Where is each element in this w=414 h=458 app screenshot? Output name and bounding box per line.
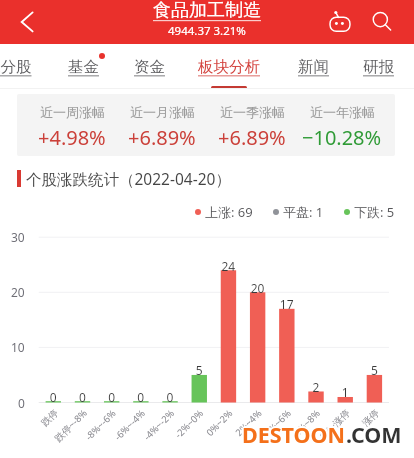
staticText: +6.89% bbox=[128, 124, 196, 151]
staticText: 研报 bbox=[363, 57, 394, 77]
staticText: 基金 bbox=[68, 57, 99, 77]
staticText: −10.28% bbox=[302, 124, 382, 151]
staticText: 成分股 bbox=[0, 57, 32, 77]
button[interactable]: 资金 bbox=[130, 44, 168, 89]
staticText: 食品加工制造 bbox=[153, 0, 261, 22]
staticText: 近一年涨幅 bbox=[310, 104, 375, 120]
button[interactable]: 基金 bbox=[64, 44, 102, 89]
button[interactable]: 研报 bbox=[359, 44, 397, 89]
staticText: 4944.37 3.21% bbox=[168, 23, 246, 39]
staticText: 平盘: 1 bbox=[283, 203, 324, 221]
staticText: 新闻 bbox=[298, 57, 329, 77]
button[interactable]: AI assistant bbox=[318, 0, 362, 44]
staticText: 近一月涨幅 bbox=[130, 104, 195, 120]
staticText: 下跌: 5 bbox=[354, 203, 395, 221]
staticText: 近一周涨幅 bbox=[40, 104, 105, 120]
button[interactable]: Back bbox=[0, 0, 54, 44]
button[interactable]: 新闻 bbox=[294, 44, 332, 89]
staticText: 资金 bbox=[134, 57, 165, 77]
staticText: 上涨: 69 bbox=[205, 203, 253, 221]
staticText: 个股涨跌统计（2022-04-20） bbox=[26, 168, 231, 189]
staticText: 板块分析 bbox=[198, 57, 260, 77]
staticText: 近一季涨幅 bbox=[220, 104, 285, 120]
staticText: +4.98% bbox=[38, 124, 106, 151]
staticText: +6.89% bbox=[218, 124, 286, 151]
button[interactable]: 成分股 bbox=[0, 44, 35, 89]
button[interactable]: 板块分析 bbox=[196, 44, 262, 89]
button[interactable]: Search bbox=[360, 0, 404, 44]
